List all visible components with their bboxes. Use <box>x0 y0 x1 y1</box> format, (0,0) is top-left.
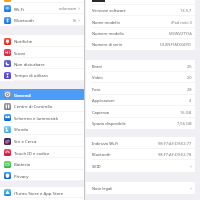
button[interactable]: iTunes Store e App Store <box>0 187 84 198</box>
button[interactable]: Capienza <box>86 106 195 118</box>
staticText: Capienza <box>92 110 110 115</box>
button[interactable]: Bluetooth <box>86 149 195 160</box>
button[interactable]: Non disturbare <box>0 58 84 69</box>
staticText: Foto <box>92 87 101 92</box>
staticText: MGNV2TY/A <box>169 31 192 36</box>
button[interactable]: Spazio disponibile <box>86 118 195 129</box>
button[interactable]: Note legali <box>86 182 195 194</box>
staticText: SEID <box>92 164 101 169</box>
staticText: Numero modello <box>92 31 124 36</box>
staticText: Bluetooth <box>14 17 34 23</box>
button[interactable]: Generali <box>0 89 84 100</box>
staticText: Spazio disponibile <box>92 121 126 126</box>
button[interactable]: Video <box>86 72 195 83</box>
staticText: Nome modello <box>92 20 120 25</box>
staticText: iTunes Store e App Store <box>14 190 64 196</box>
button[interactable]: Batteria <box>0 158 84 170</box>
button[interactable]: Nome modello <box>86 16 195 28</box>
staticText: 25 <box>187 64 192 69</box>
staticText: Suoni <box>14 50 26 56</box>
button[interactable]: Sfondo <box>0 123 84 135</box>
staticText: 4 <box>189 98 192 103</box>
button[interactable]: Versione software <box>86 5 195 16</box>
staticText: 98:F7:AF:D9:E2:77 <box>158 141 192 146</box>
button[interactable]: Notifiche <box>0 35 84 47</box>
staticText: eduroam <box>59 6 77 11</box>
button[interactable]: Brani <box>86 60 195 72</box>
staticText: Video <box>92 75 103 80</box>
staticText: Bluetooth <box>92 152 111 157</box>
button[interactable]: Numero di serie <box>86 39 195 50</box>
button[interactable]: Centro di Controllo <box>0 100 84 112</box>
button[interactable]: Applicazioni <box>86 95 195 106</box>
staticText: Numero di serie <box>92 42 123 47</box>
button[interactable]: Indirizzo Wi-Fi <box>86 137 195 149</box>
staticText: Wi-Fi <box>14 6 24 12</box>
button[interactable]: Siri e Cerca <box>0 135 84 147</box>
button[interactable]: Foto <box>86 83 195 95</box>
button[interactable]: SEID <box>86 160 195 172</box>
staticText: Schermo e luminosità <box>14 115 58 121</box>
staticText: Touch ID e codice <box>14 150 50 156</box>
button[interactable]: Schermo e luminosità <box>0 112 84 123</box>
staticText: DLXNF5MXG6YD <box>160 42 192 47</box>
staticText: 98:F7:AF:D9:E2:78 <box>158 152 192 157</box>
staticText: Centro di Controllo <box>14 103 53 109</box>
staticText: iPad mini 3 <box>171 20 192 25</box>
staticText: 28 <box>187 87 192 92</box>
button[interactable]: Privacy <box>0 170 84 181</box>
staticText: 13.5.7 <box>180 8 192 13</box>
staticText: Non disturbare <box>14 61 45 67</box>
staticText: Sì <box>73 18 77 23</box>
staticText: 7,66 GB <box>177 121 192 126</box>
staticText: Indirizzo Wi-Fi <box>92 141 119 146</box>
button[interactable]: Bluetooth <box>0 14 84 26</box>
button[interactable]: Touch ID e codice <box>0 147 84 158</box>
button[interactable]: Suoni <box>0 47 84 58</box>
staticText: Note legali <box>92 186 113 191</box>
staticText: Notifiche <box>14 38 33 44</box>
staticText: Siri e Cerca <box>14 138 37 144</box>
button[interactable]: Tempo di utilizzo <box>0 69 84 81</box>
staticText: Batteria <box>14 161 31 167</box>
button[interactable]: Numero modello <box>86 28 195 39</box>
staticText: Generali <box>14 92 31 98</box>
staticText: Tempo di utilizzo <box>14 72 48 78</box>
button[interactable]: Wi-Fi <box>0 3 84 14</box>
staticText: 20 <box>187 75 192 80</box>
staticText: 16 GB <box>180 110 192 115</box>
staticText: Privacy <box>14 173 29 179</box>
staticText: Applicazioni <box>92 98 115 103</box>
staticText: Sfondo <box>14 126 29 132</box>
staticText: Brani <box>92 64 102 69</box>
staticText: Versione software <box>92 8 126 13</box>
